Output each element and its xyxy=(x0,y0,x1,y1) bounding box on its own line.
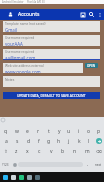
button[interactable]: Username required xyxy=(3,35,100,46)
button[interactable]: m xyxy=(81,146,93,157)
button[interactable]: z xyxy=(11,146,22,157)
button[interactable]: y xyxy=(54,126,64,136)
staticText: x xyxy=(26,148,29,155)
staticText: a xyxy=(5,138,8,145)
staticText: Web site address external xyxy=(5,64,44,68)
button[interactable]: Taskbar item 4 xyxy=(25,173,33,181)
button[interactable]: i xyxy=(74,126,84,136)
staticText: ⇧ xyxy=(4,149,8,154)
staticText: ?123 xyxy=(2,163,9,167)
staticText: Template name (not saved) xyxy=(5,22,46,26)
staticText: Notes xyxy=(5,77,15,82)
button[interactable]: n xyxy=(69,146,81,157)
staticText: aa@gmail.com xyxy=(5,55,36,60)
staticText: Username required xyxy=(5,36,35,40)
button[interactable]: Taskbar item 3 xyxy=(17,173,25,181)
button[interactable]: h xyxy=(54,136,64,146)
staticText: m xyxy=(85,148,90,155)
staticText: c xyxy=(38,148,41,155)
button[interactable]: e xyxy=(22,126,33,136)
button[interactable]: l xyxy=(84,136,94,146)
button[interactable]: w xyxy=(11,126,22,136)
staticText: l xyxy=(88,138,90,145)
staticText: OPEN xyxy=(87,64,96,68)
button[interactable]: x xyxy=(22,146,33,157)
staticText: yourAAA xyxy=(5,41,23,46)
button[interactable]: v xyxy=(45,146,57,157)
staticText: v xyxy=(50,148,53,155)
staticText: f xyxy=(38,138,40,145)
staticText: p xyxy=(97,128,101,135)
staticText: h xyxy=(57,138,61,145)
staticText: w xyxy=(15,128,19,135)
button[interactable]: UPDATE DATA, DEFAULT TO SAVE ACCOUNT xyxy=(3,92,100,99)
button[interactable]: f xyxy=(34,136,44,146)
staticText: j xyxy=(68,138,70,145)
staticText: n xyxy=(73,148,77,155)
staticText: . xyxy=(87,161,89,168)
staticText: s xyxy=(16,138,19,145)
button[interactable]: s xyxy=(12,136,23,146)
button[interactable]: a xyxy=(1,136,12,146)
button[interactable]: Save xyxy=(78,10,87,19)
staticText: k xyxy=(78,138,81,145)
button[interactable]: d xyxy=(23,136,34,146)
button[interactable]: Username required xyxy=(3,49,100,60)
staticText: b xyxy=(61,148,65,155)
button[interactable]: Backspace xyxy=(93,146,104,157)
button[interactable]: Web site address external xyxy=(3,63,83,73)
button[interactable]: g xyxy=(44,136,54,146)
button[interactable]: More options xyxy=(96,11,103,18)
staticText: y xyxy=(58,128,61,135)
staticText: q xyxy=(4,128,8,135)
button[interactable]: Search xyxy=(87,10,96,19)
staticText: ⌫ xyxy=(96,149,102,154)
button[interactable]: Taskbar item 5 xyxy=(33,173,41,181)
button[interactable]: q xyxy=(0,126,11,136)
button[interactable]: Shift xyxy=(0,146,11,157)
staticText: u xyxy=(67,128,71,135)
staticText: z xyxy=(15,148,18,155)
staticText: Android Emulator xyxy=(2,0,24,4)
button[interactable]: ?123 xyxy=(0,157,11,172)
button[interactable]: Template name (not saved) xyxy=(3,21,100,32)
button[interactable]: o xyxy=(84,126,94,136)
button[interactable]: u xyxy=(64,126,74,136)
staticText: next xyxy=(95,163,102,167)
staticText: r xyxy=(37,128,40,135)
staticText: e xyxy=(26,128,29,135)
button[interactable]: r xyxy=(33,126,44,136)
button[interactable]: Emoji xyxy=(11,157,18,172)
staticText: Pixel 4a API 30 xyxy=(27,0,45,4)
staticText: www.google.com xyxy=(5,69,41,73)
staticText: Accounts xyxy=(18,11,40,18)
button[interactable]: OPEN xyxy=(85,63,98,68)
staticText: Gmail xyxy=(5,27,18,32)
button[interactable]: j xyxy=(64,136,74,146)
button[interactable]: c xyxy=(33,146,45,157)
staticText: t xyxy=(48,128,50,135)
button[interactable]: Notes xyxy=(3,76,100,87)
button[interactable]: p xyxy=(94,126,104,136)
staticText: i xyxy=(78,128,80,135)
button[interactable]: Taskbar item 1 xyxy=(1,173,9,181)
staticText: Username required xyxy=(5,50,35,54)
staticText: g xyxy=(47,138,51,145)
button[interactable]: App icon xyxy=(6,10,15,19)
staticText: d xyxy=(27,138,31,145)
button[interactable]: Taskbar item 2 xyxy=(9,173,17,181)
staticText: o xyxy=(87,128,91,135)
button[interactable]: Next xyxy=(92,157,104,172)
button[interactable]: . xyxy=(83,157,92,172)
button[interactable]: k xyxy=(74,136,84,146)
staticText: UPDATE DATA, DEFAULT TO SAVE ACCOUNT xyxy=(17,93,86,98)
button[interactable]: b xyxy=(57,146,69,157)
button[interactable]: t xyxy=(44,126,54,136)
button[interactable]: Enter xyxy=(94,136,104,146)
